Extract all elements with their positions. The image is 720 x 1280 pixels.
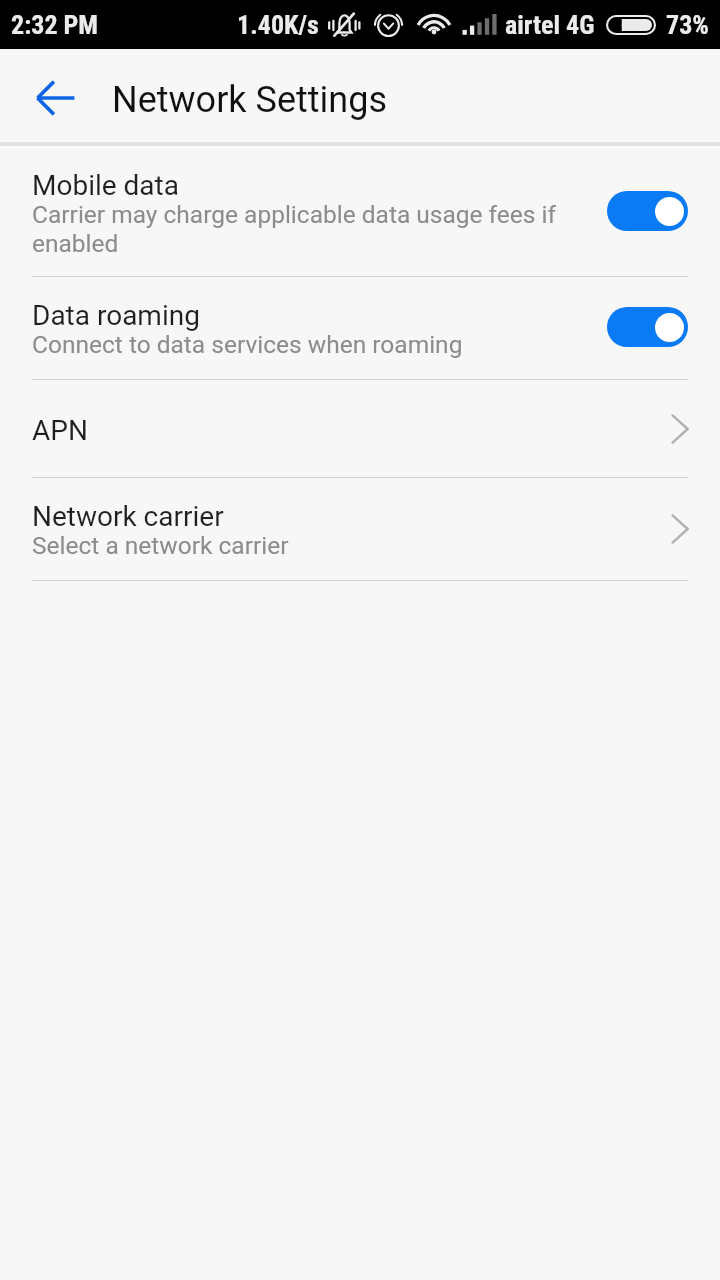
button[interactable]: APN xyxy=(0,380,720,477)
staticText: 1.40K/s xyxy=(237,10,319,40)
staticText: Carrier may charge applicable data usage… xyxy=(32,200,592,258)
staticText: Network carrier xyxy=(32,500,224,533)
staticText: 2:32 PM xyxy=(11,10,99,40)
staticText: 73% xyxy=(666,10,709,40)
staticText: airtel 4G xyxy=(505,10,595,40)
button[interactable]: Network carrier xyxy=(0,478,720,580)
button[interactable]: Open APN xyxy=(659,409,699,449)
button[interactable]: Open Network carrier xyxy=(659,509,699,549)
button[interactable]: Mobile data xyxy=(0,148,720,276)
staticText: Data roaming xyxy=(32,299,200,332)
button[interactable]: Data roaming xyxy=(0,277,720,379)
staticText: Network Settings xyxy=(112,79,387,121)
staticText: Select a network carrier xyxy=(32,531,289,560)
staticText: Connect to data services when roaming xyxy=(32,330,463,359)
staticText: Mobile data xyxy=(32,169,179,202)
button[interactable]: Back xyxy=(26,68,86,128)
staticText: APN xyxy=(32,414,88,447)
button[interactable]: Toggle Data roaming xyxy=(607,307,688,347)
button[interactable]: Toggle Mobile data xyxy=(607,191,688,231)
